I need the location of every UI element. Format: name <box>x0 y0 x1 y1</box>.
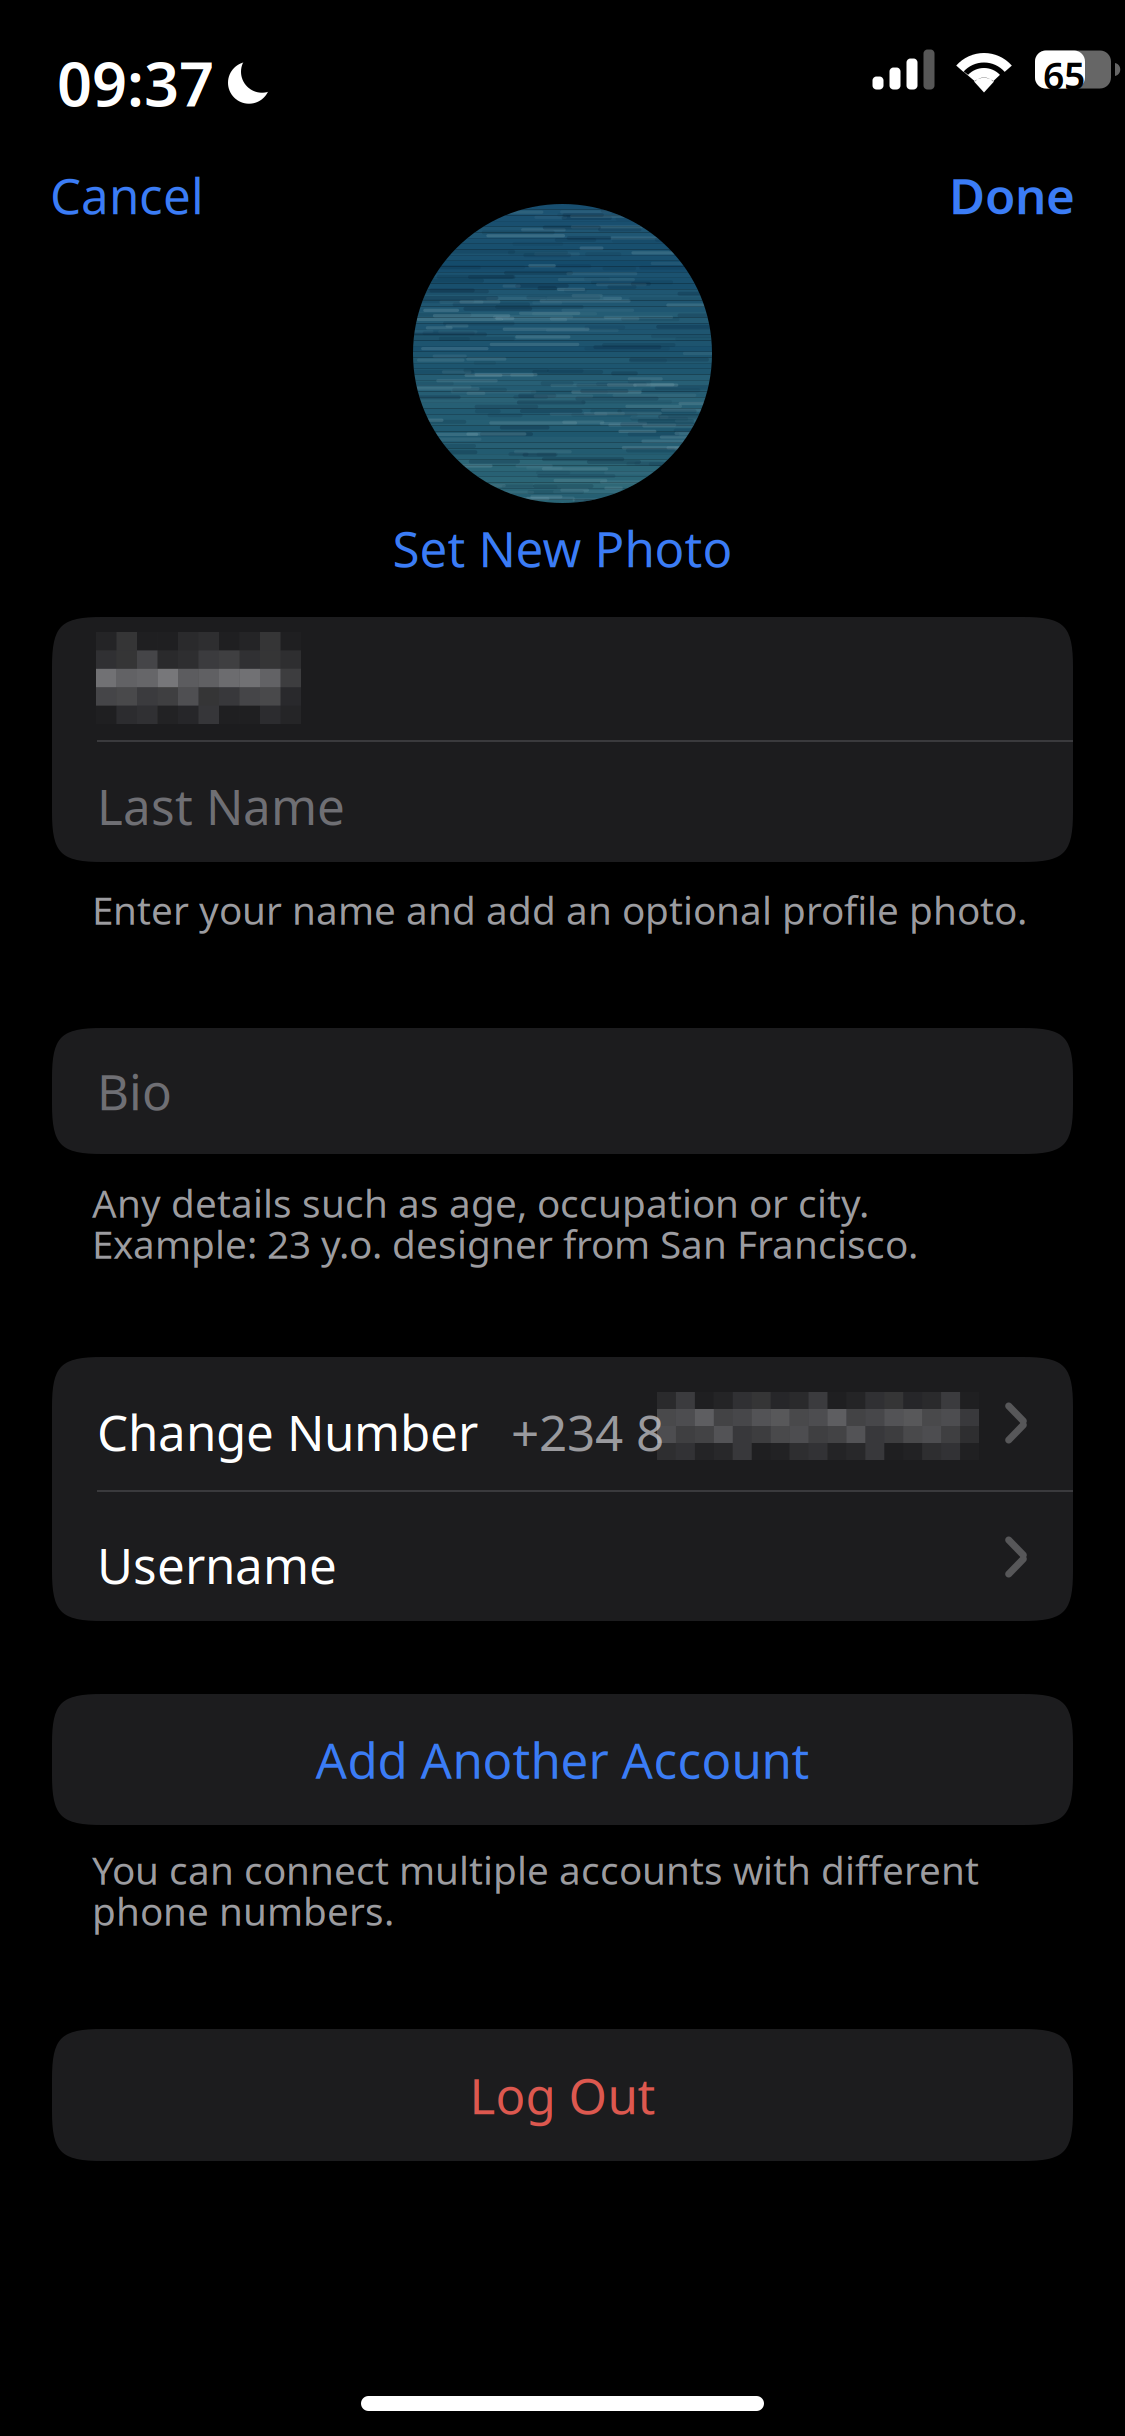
staticText: Change Number <box>97 1399 478 1464</box>
staticText: Cancel <box>50 162 204 228</box>
button[interactable]: Add Another Account <box>52 1694 1073 1825</box>
staticText: Username <box>97 1532 337 1597</box>
staticText: Done <box>949 162 1075 228</box>
button[interactable]: Log Out <box>52 2029 1073 2161</box>
staticText: Enter your name and add an optional prof… <box>92 884 1027 935</box>
staticText: Example: 23 y.o. designer from San Franc… <box>92 1218 918 1269</box>
staticText: Set New Photo <box>392 515 732 581</box>
staticText: 65 <box>1043 50 1085 100</box>
staticText: 09:37 <box>57 42 214 123</box>
staticText: Bio <box>97 1058 172 1124</box>
button[interactable]: Done <box>895 140 1125 250</box>
button[interactable]: Change profile photo <box>413 204 712 503</box>
staticText: Log Out <box>469 2062 655 2128</box>
staticText: You can connect multiple accounts with d… <box>92 1844 979 1895</box>
staticText: +234 8 <box>511 1399 664 1464</box>
staticText: Any details such as age, occupation or c… <box>92 1177 869 1228</box>
staticText: Add Another Account <box>315 1727 809 1792</box>
button[interactable]: Cancel <box>0 140 260 250</box>
button[interactable]: Change Number <box>52 1357 1073 1490</box>
staticText: Last Name <box>97 773 345 838</box>
staticText: phone numbers. <box>92 1885 394 1936</box>
button[interactable]: Username <box>52 1492 1073 1623</box>
button[interactable]: Set New Photo <box>0 512 1125 584</box>
